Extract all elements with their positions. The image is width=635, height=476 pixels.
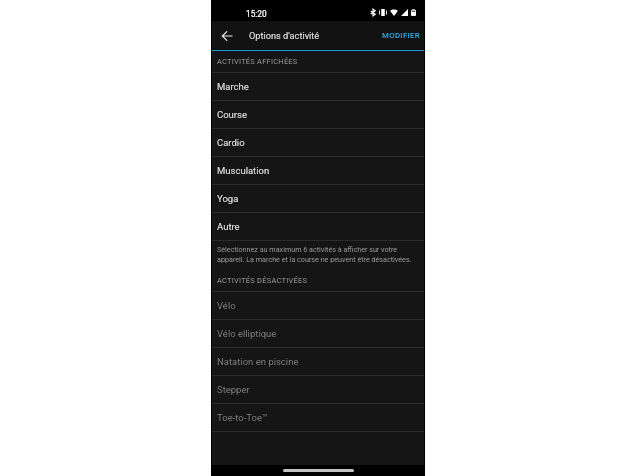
staticText: appareil. La marche et la course ne peuv…	[217, 255, 412, 263]
staticText: Musculation	[217, 165, 270, 176]
button[interactable]: Stepper	[211, 376, 425, 403]
button[interactable]: Autre	[211, 213, 425, 240]
button[interactable]: Cardio	[211, 129, 425, 156]
staticText: Marche	[217, 81, 249, 92]
button[interactable]: Toe-to-Toe™	[211, 404, 425, 431]
button[interactable]: Vélo elliptique	[211, 320, 425, 347]
button[interactable]: Course	[211, 101, 425, 128]
staticText: Yoga	[217, 193, 239, 204]
staticText: Stepper	[217, 384, 250, 395]
staticText: Course	[217, 109, 247, 120]
button[interactable]: Vélo	[211, 292, 425, 319]
staticText: 15:20	[246, 9, 267, 19]
staticText: MODIFIER	[382, 31, 421, 40]
staticText: ACTIVITÉS AFFICHÉES	[217, 57, 298, 66]
staticText: Vélo	[217, 300, 236, 311]
button[interactable]: Musculation	[211, 157, 425, 184]
staticText: Toe-to-Toe™	[217, 412, 268, 423]
button[interactable]: Yoga	[211, 185, 425, 212]
staticText: Sélectionnez au maximum 6 activités à af…	[217, 245, 398, 253]
staticText: Natation en piscine	[217, 356, 299, 367]
button[interactable]: Marche	[211, 73, 425, 100]
staticText: Cardio	[217, 137, 245, 148]
button[interactable]: Natation en piscine	[211, 348, 425, 375]
button[interactable]: MODIFIER	[376, 25, 425, 46]
staticText: ACTIVITÉS DÉSACTIVÉES	[217, 276, 308, 285]
button[interactable]: Back	[221, 30, 233, 42]
staticText: Autre	[217, 221, 240, 232]
staticText: Options d'activité	[249, 30, 320, 41]
staticText: Vélo elliptique	[217, 328, 277, 339]
